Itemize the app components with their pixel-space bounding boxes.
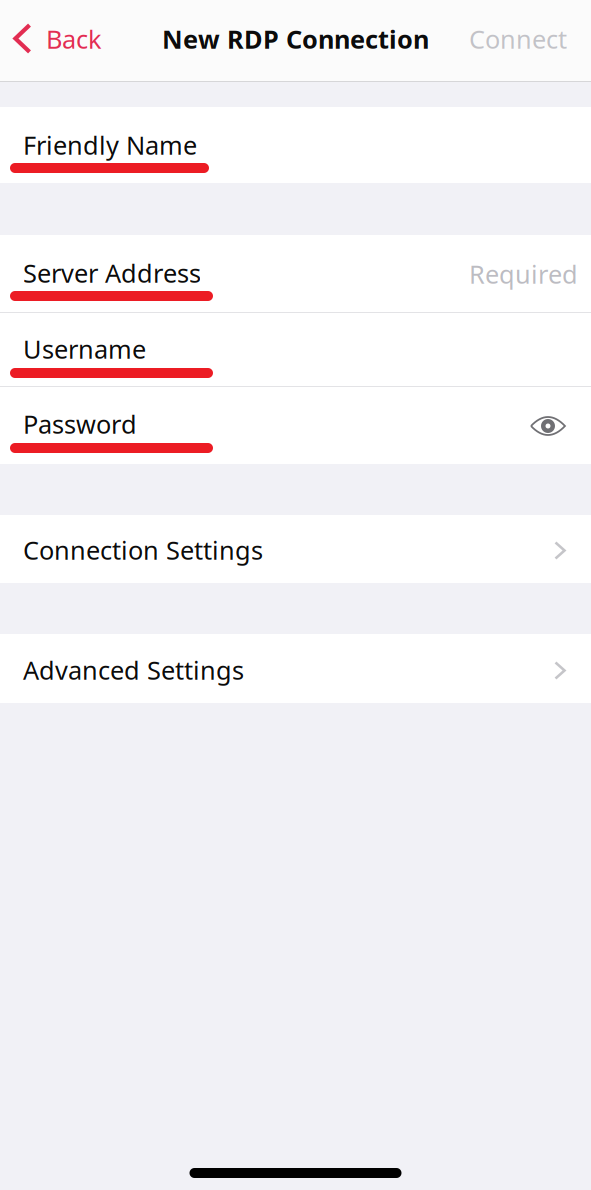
staticText: Server Address <box>23 256 201 290</box>
staticText: Connection Settings <box>23 533 263 567</box>
staticText: Username <box>23 332 146 366</box>
staticText: Password <box>23 407 137 441</box>
staticText: Friendly Name <box>23 128 197 162</box>
staticText: Advanced Settings <box>23 653 244 687</box>
staticText: Connect <box>469 22 567 56</box>
staticText: Required <box>469 257 578 291</box>
button[interactable]: Connect <box>451 0 591 81</box>
button[interactable]: Back <box>0 0 112 81</box>
staticText: Back <box>46 22 102 56</box>
staticText: New RDP Connection <box>162 22 429 56</box>
button[interactable]: Show password <box>530 415 566 437</box>
button[interactable]: Connection Settings <box>0 515 591 583</box>
button[interactable]: Advanced Settings <box>0 634 591 703</box>
